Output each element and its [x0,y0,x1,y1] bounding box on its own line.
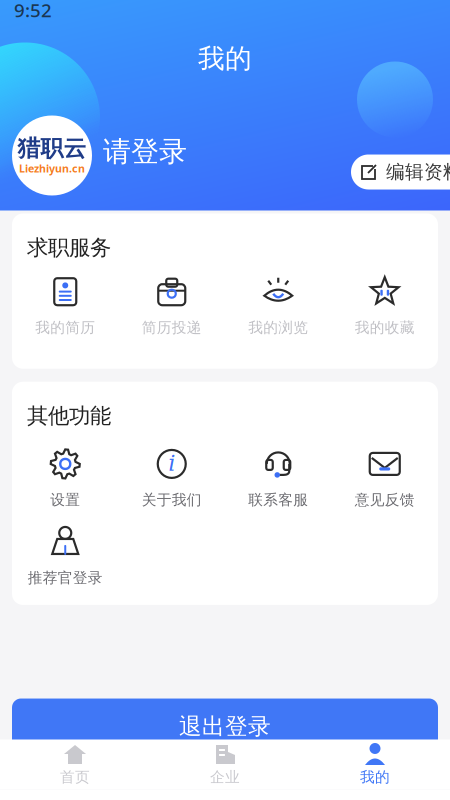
staticText: 求职服务 [27,234,111,261]
staticText: 关于我们 [142,491,202,509]
staticText: 我的浏览 [248,319,308,337]
button[interactable]: 我的浏览 [225,275,331,339]
staticText: 联系客服 [248,491,308,509]
staticText: 我的收藏 [355,319,415,337]
button[interactable]: 我的收藏 [331,275,438,339]
staticText: 编辑资料 [386,160,450,183]
staticText: i [168,450,175,476]
staticText: 推荐官登录 [28,569,103,587]
button[interactable]: 企业 [150,738,300,791]
button[interactable]: 退出登录 [12,698,438,754]
button[interactable]: 请登录 [103,134,187,169]
staticText: 请登录 [103,134,187,169]
button[interactable]: 简历投递 [118,275,225,339]
staticText: 我的 [360,768,390,786]
staticText: 设置 [50,491,80,509]
staticText: 9:52 [14,0,52,22]
button[interactable]: 联系客服 [225,447,331,511]
button[interactable]: 编辑资料 [351,154,450,189]
staticText: 企业 [210,768,240,786]
staticText: 首页 [60,768,90,786]
button[interactable]: 设置 [12,447,118,511]
button[interactable]: 我的简历 [12,275,118,339]
staticText: Liezhiyun.cn [19,161,85,175]
staticText: 我的简历 [35,319,95,337]
staticText: 我的 [198,42,252,75]
staticText: 猎职云 [17,134,86,162]
staticText: 意见反馈 [355,491,415,509]
button[interactable]: 我的 [300,738,450,791]
staticText: 简历投递 [142,319,202,337]
button[interactable]: 推荐官登录 [12,525,118,589]
staticText: 其他功能 [27,403,111,429]
button[interactable]: 首页 [0,738,150,791]
button[interactable]: i [118,447,225,511]
staticText: 退出登录 [179,712,271,740]
button[interactable]: 头像 [12,115,92,195]
button[interactable]: 意见反馈 [331,447,438,511]
